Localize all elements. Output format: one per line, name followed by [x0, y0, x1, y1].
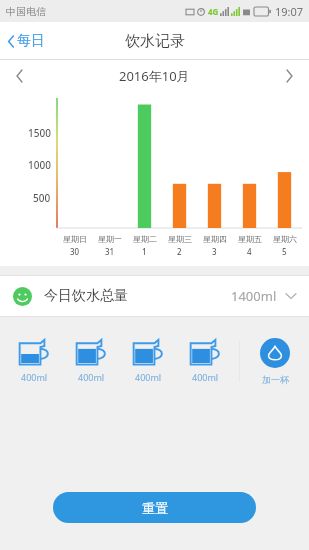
staticText: 1000: [28, 158, 51, 172]
staticText: 400ml: [78, 371, 105, 383]
staticText: 星期五: [238, 234, 262, 244]
staticText: 2016年10月: [119, 67, 190, 85]
staticText: 重置: [142, 500, 168, 516]
button[interactable]: 400ml: [63, 336, 120, 386]
button[interactable]: 今日饮水总量: [0, 276, 309, 316]
button[interactable]: Add a cup: [245, 335, 305, 388]
button[interactable]: 重置: [53, 492, 256, 523]
button[interactable]: 每日: [0, 25, 57, 57]
staticText: 1: [142, 246, 147, 257]
staticText: 1400ml: [231, 287, 277, 305]
other: Add a cup: [260, 338, 290, 368]
staticText: 星期六: [273, 234, 297, 244]
button[interactable]: 400ml: [120, 336, 177, 386]
staticText: 星期一: [98, 234, 122, 244]
staticText: 400ml: [21, 371, 48, 383]
staticText: 中国电信: [6, 5, 46, 18]
staticText: 5: [282, 246, 287, 257]
staticText: 星期日: [63, 234, 87, 244]
staticText: 星期二: [133, 234, 157, 244]
staticText: 星期三: [168, 234, 192, 244]
staticText: 3: [212, 246, 217, 257]
staticText: 4: [247, 246, 252, 257]
staticText: 饮水记录: [125, 32, 185, 51]
button[interactable]: Next month: [278, 64, 301, 88]
staticText: 31: [105, 246, 115, 257]
staticText: 30: [70, 246, 80, 257]
button[interactable]: 400ml: [177, 336, 234, 386]
staticText: 今日饮水总量: [44, 287, 128, 305]
staticText: 500: [33, 191, 51, 205]
staticText: 星期四: [203, 234, 227, 244]
staticText: 400ml: [135, 371, 162, 383]
staticText: 400ml: [192, 371, 219, 383]
button[interactable]: Previous month: [8, 64, 31, 88]
staticText: 2: [177, 246, 182, 257]
staticText: 加一杯: [262, 374, 289, 385]
staticText: 4G: [208, 6, 219, 17]
staticText: 19:07: [275, 4, 304, 19]
staticText: 每日: [17, 32, 45, 50]
staticText: 1500: [28, 126, 51, 140]
button[interactable]: 400ml: [6, 336, 63, 386]
